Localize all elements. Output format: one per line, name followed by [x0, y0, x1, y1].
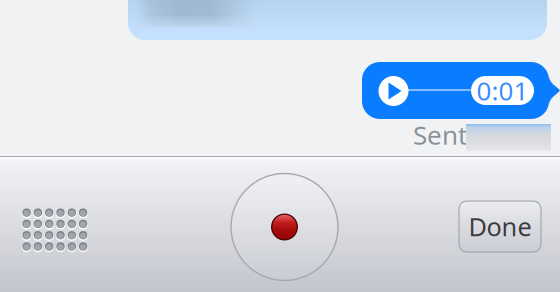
button[interactable]: Play — [378, 76, 408, 106]
button[interactable]: Done — [459, 201, 541, 252]
staticText: Done — [468, 209, 531, 244]
staticText: 0:01 — [476, 73, 528, 108]
staticText: Sent — [413, 117, 467, 152]
button[interactable]: Record — [231, 173, 338, 280]
